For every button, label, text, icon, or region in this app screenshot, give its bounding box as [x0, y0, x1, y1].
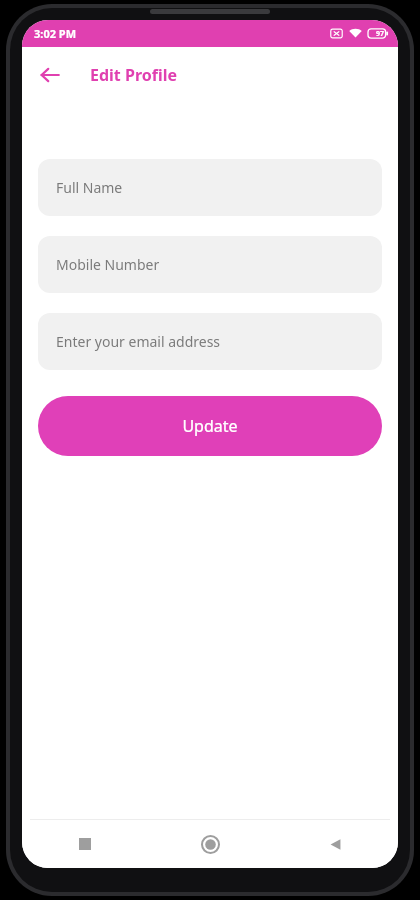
staticText: Enter your email address [56, 332, 221, 351]
staticText: 3:02 PM [34, 26, 77, 41]
button[interactable]: Enter your email address [38, 313, 382, 370]
button[interactable]: Recents [22, 820, 148, 868]
button[interactable]: Home [148, 820, 273, 868]
button[interactable]: Back [30, 55, 70, 95]
button[interactable]: Full Name [38, 159, 382, 216]
staticText: Full Name [56, 178, 123, 197]
button[interactable]: Back [273, 820, 398, 868]
button[interactable]: Update [38, 396, 382, 456]
staticText: Edit Profile [90, 64, 178, 86]
button[interactable]: Mobile Number [38, 236, 382, 293]
staticText: 97 [376, 29, 385, 39]
staticText: Update [182, 415, 238, 437]
staticText: Mobile Number [56, 255, 160, 274]
